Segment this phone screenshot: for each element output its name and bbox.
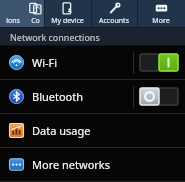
staticText: Accounts [99, 16, 129, 26]
staticText: Co [31, 16, 40, 26]
button[interactable]: Data usage [0, 114, 185, 147]
staticText: Bluetooth [32, 89, 133, 104]
button[interactable]: Bluetooth [0, 80, 185, 113]
button[interactable]: Accounts [91, 0, 137, 28]
staticText: More [152, 16, 170, 26]
button[interactable]: More networks [0, 148, 185, 181]
button[interactable]: Co [26, 0, 44, 28]
staticText: Data usage [32, 123, 178, 138]
button[interactable]: More [137, 0, 185, 28]
staticText: ions [6, 16, 20, 26]
staticText: Network connections [10, 31, 100, 43]
staticText: My device [51, 16, 84, 26]
button[interactable]: My device [44, 0, 91, 28]
staticText: More networks [32, 157, 178, 172]
staticText: Wi-Fi [32, 55, 133, 70]
button[interactable]: Wi-Fi [0, 46, 185, 79]
button[interactable]: Turn off [140, 54, 178, 71]
button[interactable]: ions [0, 0, 26, 28]
button[interactable]: Turn on [140, 88, 178, 105]
